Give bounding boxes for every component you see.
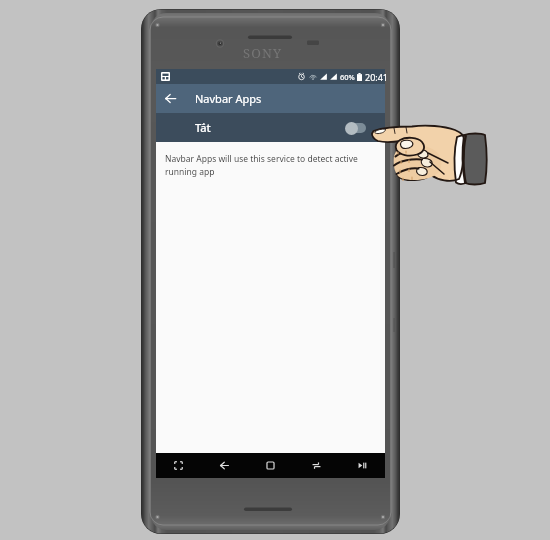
button[interactable]: Back xyxy=(156,84,185,113)
staticText: 20:41 xyxy=(365,71,389,83)
staticText: Tắt xyxy=(195,120,211,135)
button[interactable]: Recent apps xyxy=(247,453,293,478)
other: Pointing hand xyxy=(0,0,550,540)
button[interactable]: Play pause xyxy=(339,453,385,478)
button[interactable]: Switch apps xyxy=(293,453,339,478)
staticText: Navbar Apps will use this service to det… xyxy=(165,153,358,177)
button[interactable]: Tắt xyxy=(156,113,385,142)
staticText: Navbar Apps xyxy=(195,91,262,106)
staticText: 60% xyxy=(340,72,355,82)
staticText: SONY xyxy=(243,44,283,62)
button[interactable]: Back xyxy=(201,453,247,478)
button[interactable]: Back xyxy=(156,84,385,113)
button[interactable]: Toggle service xyxy=(344,117,370,139)
button[interactable]: Fullscreen xyxy=(156,453,201,478)
